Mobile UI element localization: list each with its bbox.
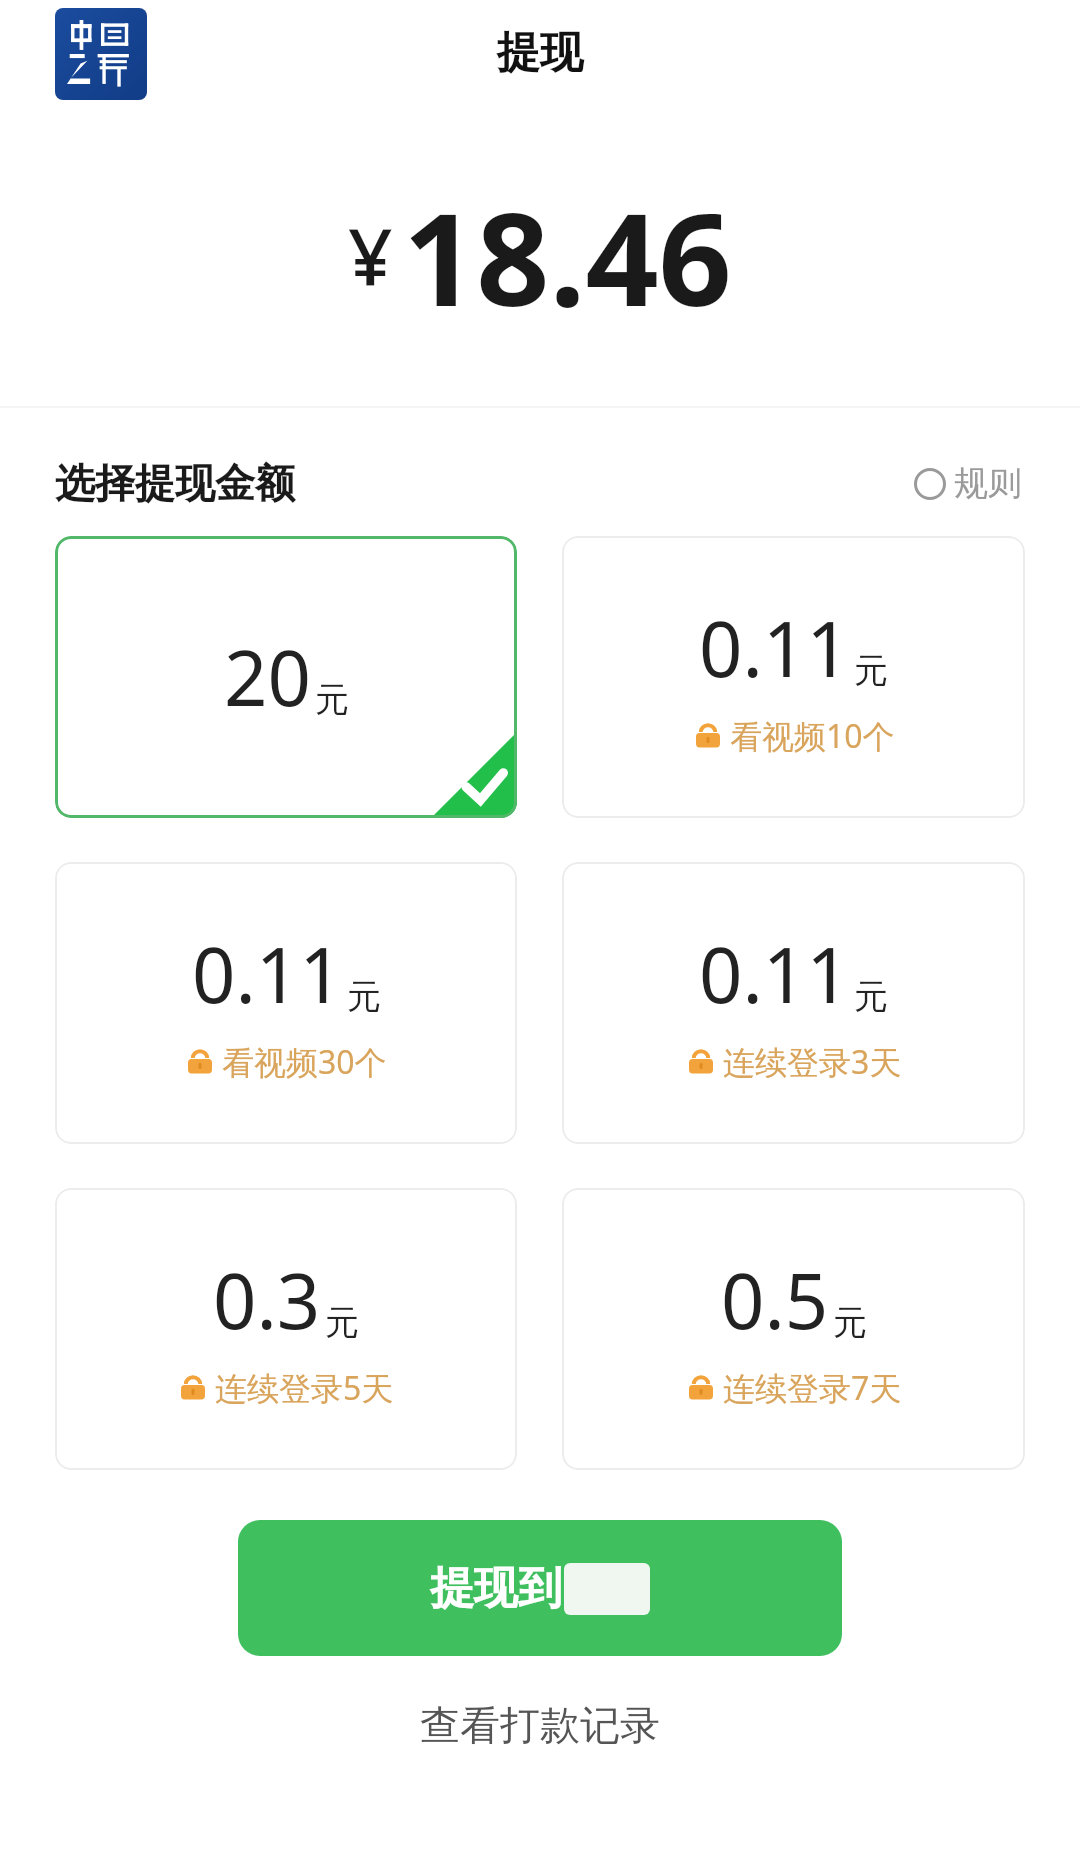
button[interactable]: 查看打款记录 [380,1690,700,1760]
staticText: 连续登录7天 [723,1366,902,1410]
staticText: 提现 [497,26,583,80]
button[interactable]: 中国之声 [55,8,147,100]
staticText: 0.3 [213,1248,321,1352]
staticText: ¥ [348,203,393,309]
staticText: 0.11 [192,922,343,1026]
staticText: 看视频30个 [222,1040,387,1084]
staticText: 连续登录5天 [215,1366,394,1410]
button[interactable]: 0.5 [562,1188,1025,1470]
button[interactable]: 提现到 [238,1520,842,1656]
button[interactable]: 0.11 [55,862,517,1144]
staticText: 查看打款记录 [420,1700,660,1750]
staticText: 0.11 [699,596,850,700]
staticText: 看视频10个 [730,714,895,758]
button[interactable]: 0.3 [55,1188,517,1470]
staticText: 元 [315,678,349,721]
staticText: 选择提现金额 [55,458,295,508]
staticText: 提现到 [430,1561,562,1616]
button[interactable]: 0.11 [562,862,1025,1144]
button[interactable]: 规则 [914,462,1022,505]
staticText: 0.5 [721,1248,829,1352]
staticText: 元 [833,1301,867,1344]
staticText: 元 [325,1301,359,1344]
staticText: 元 [347,975,381,1018]
staticText: 元 [854,649,888,692]
staticText: 20 [224,625,311,729]
button[interactable]: 20 [55,536,517,818]
staticText: 连续登录3天 [723,1040,902,1084]
staticText: 元 [854,975,888,1018]
staticText: 18.46 [403,169,732,343]
button[interactable]: 0.11 [562,536,1025,818]
staticText: 0.11 [699,922,850,1026]
staticText: 规则 [954,462,1022,505]
